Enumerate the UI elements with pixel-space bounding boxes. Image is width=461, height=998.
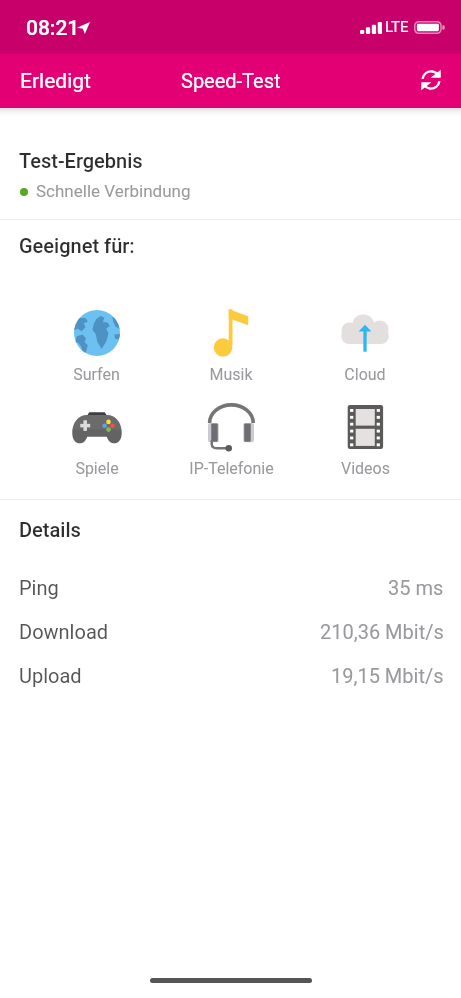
- staticText: Schnelle Verbindung: [36, 181, 191, 201]
- staticText: Details: [19, 518, 81, 541]
- button[interactable]: Surfen: [29, 308, 164, 384]
- staticText: 19,15 Mbit/s: [331, 664, 444, 687]
- staticText: Speed-Test: [181, 69, 281, 92]
- staticText: Musik: [209, 365, 253, 384]
- staticText: 35 ms: [388, 576, 444, 599]
- staticText: Geeignet für:: [19, 234, 135, 257]
- staticText: 08:21: [26, 16, 80, 41]
- button[interactable]: Aktualisieren: [402, 56, 461, 106]
- button[interactable]: Videos: [298, 402, 432, 478]
- staticText: Erledigt: [20, 69, 91, 94]
- staticText: Ping: [19, 576, 59, 599]
- staticText: Videos: [341, 459, 390, 478]
- staticText: Upload: [19, 664, 82, 687]
- staticText: IP-Telefonie: [189, 459, 274, 478]
- button[interactable]: Erledigt: [0, 59, 105, 104]
- staticText: Spiele: [75, 459, 119, 478]
- button[interactable]: IP-Telefonie: [164, 402, 298, 478]
- staticText: Download: [19, 620, 109, 643]
- staticText: Surfen: [73, 365, 120, 384]
- button[interactable]: Cloud: [298, 308, 432, 384]
- staticText: LTE: [385, 18, 409, 36]
- button[interactable]: Spiele: [29, 402, 164, 478]
- staticText: Cloud: [344, 365, 386, 384]
- staticText: Test-Ergebnis: [19, 149, 143, 172]
- staticText: 210,36 Mbit/s: [320, 620, 444, 643]
- button[interactable]: Download: [0, 609, 461, 653]
- button[interactable]: Musik: [164, 308, 298, 384]
- button[interactable]: Upload: [0, 653, 461, 697]
- button[interactable]: Ping: [0, 565, 461, 609]
